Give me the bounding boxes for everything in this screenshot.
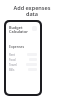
staticText: Expenses [9, 44, 25, 49]
button[interactable]: Food [9, 57, 37, 62]
staticText: Travel [9, 63, 17, 67]
staticText: Rent [9, 53, 16, 57]
staticText: Budget Calculator [9, 25, 32, 35]
staticText: Food [9, 58, 16, 62]
staticText: Add expenses data [0, 4, 64, 18]
button[interactable]: Bills [9, 67, 37, 72]
button[interactable]: Travel [9, 62, 37, 67]
button[interactable]: Rent [9, 52, 37, 57]
staticText: Bills [9, 68, 15, 72]
